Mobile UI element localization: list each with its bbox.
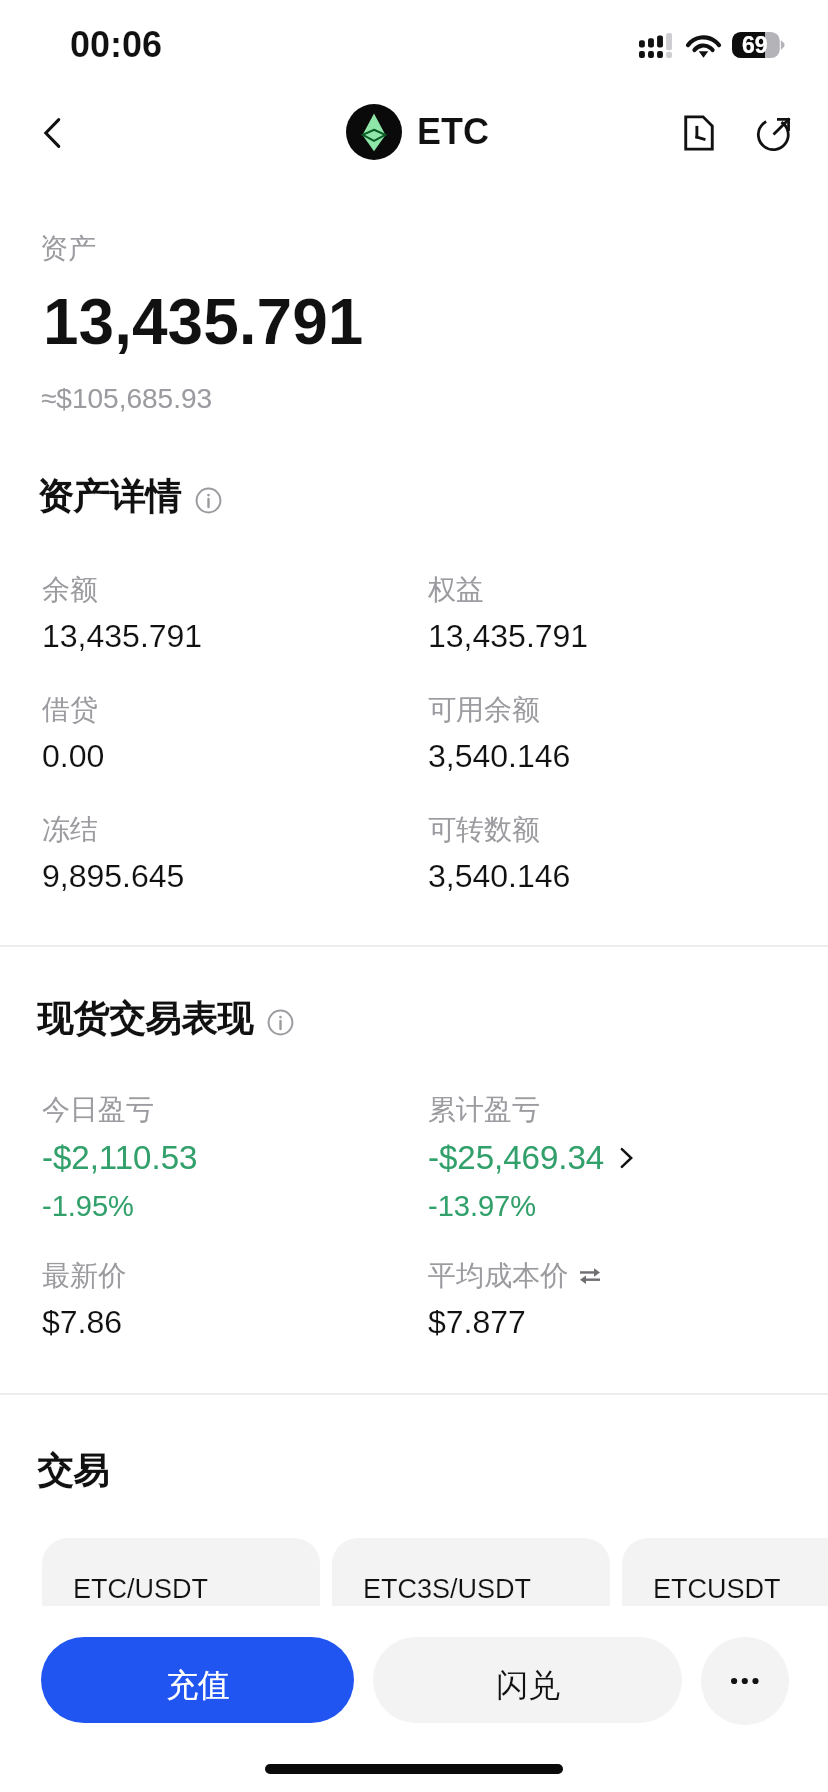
- staticText: ETCUSDT: [653, 1574, 781, 1604]
- staticText: 13,435.791: [42, 618, 203, 654]
- staticText: 13,435.791: [428, 618, 589, 654]
- staticText: 累计盈亏: [428, 1092, 540, 1127]
- staticText: -$25,469.34: [428, 1139, 605, 1176]
- staticText: 闪兑: [496, 1665, 560, 1705]
- staticText: 00:06: [70, 24, 163, 64]
- button[interactable]: 充值: [41, 1637, 354, 1723]
- staticText: -$2,110.53: [42, 1139, 198, 1176]
- button[interactable]: ETC/USDT: [42, 1538, 320, 1640]
- staticText: 0.00: [42, 738, 105, 774]
- staticText: 可转数额: [428, 812, 540, 847]
- staticText: ETC/USDT: [73, 1574, 208, 1604]
- staticText: 平均成本价: [428, 1258, 568, 1293]
- staticText: $7.86: [42, 1304, 123, 1340]
- button[interactable]: ETCUSDT: [622, 1538, 828, 1640]
- button[interactable]: Back: [20, 100, 86, 166]
- staticText: 13,435.791: [43, 286, 364, 358]
- staticText: 冻结: [42, 812, 98, 847]
- button[interactable]: More options: [701, 1637, 789, 1725]
- staticText: -1.95%: [42, 1190, 134, 1222]
- staticText: 交易: [37, 1448, 109, 1493]
- staticText: -13.97%: [428, 1190, 537, 1222]
- button[interactable]: Share: [742, 100, 808, 166]
- staticText: 资产详情: [37, 474, 181, 519]
- staticText: 充值: [166, 1665, 230, 1705]
- staticText: 最新价: [42, 1258, 126, 1293]
- staticText: 69: [742, 32, 768, 58]
- staticText: 权益: [428, 572, 484, 607]
- staticText: ETC: [417, 111, 489, 151]
- staticText: ≈$105,685.93: [41, 383, 213, 414]
- button[interactable]: Transaction history: [666, 100, 732, 166]
- staticText: 现货交易表现: [37, 996, 253, 1041]
- staticText: 可用余额: [428, 692, 540, 727]
- staticText: 3,540.146: [428, 858, 571, 894]
- staticText: 余额: [42, 572, 98, 607]
- staticText: ETC3S/USDT: [363, 1574, 532, 1604]
- staticText: 9,895.645: [42, 858, 185, 894]
- button[interactable]: 闪兑: [373, 1637, 682, 1723]
- staticText: $7.877: [428, 1304, 526, 1340]
- staticText: 资产: [40, 231, 96, 266]
- staticText: 借贷: [42, 692, 98, 727]
- staticText: 3,540.146: [428, 738, 571, 774]
- staticText: 今日盈亏: [42, 1092, 154, 1127]
- button[interactable]: ETC3S/USDT: [332, 1538, 610, 1640]
